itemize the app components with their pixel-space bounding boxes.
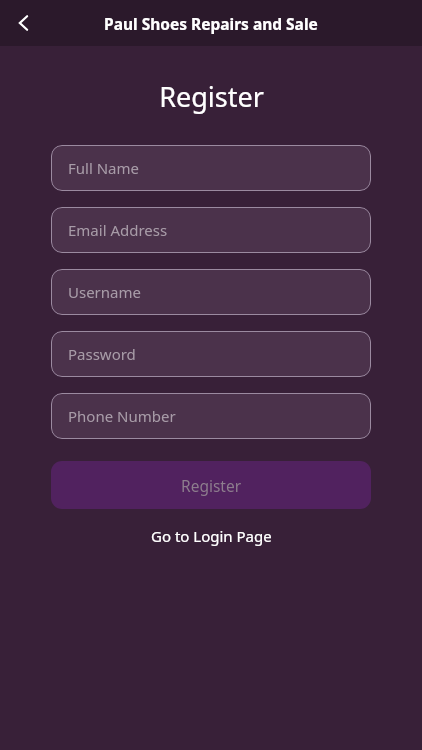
staticText: Phone Number — [68, 406, 176, 426]
staticText: Paul Shoes Repairs and Sale — [104, 13, 318, 34]
staticText: Full Name — [68, 158, 139, 178]
staticText: Register — [181, 475, 242, 496]
button[interactable]: Email Address — [51, 207, 371, 253]
staticText: Go to Login Page — [151, 526, 272, 546]
staticText: Email Address — [68, 220, 168, 240]
button[interactable]: Phone Number — [51, 393, 371, 439]
button[interactable]: Password — [51, 331, 371, 377]
button[interactable]: Go to Login Page — [141, 520, 282, 552]
button[interactable]: Back — [4, 3, 44, 43]
staticText: Username — [68, 282, 141, 302]
button[interactable]: Register — [51, 461, 371, 509]
button[interactable]: Username — [51, 269, 371, 315]
staticText: Register — [159, 78, 264, 115]
button[interactable]: Full Name — [51, 145, 371, 191]
staticText: Password — [68, 344, 136, 364]
